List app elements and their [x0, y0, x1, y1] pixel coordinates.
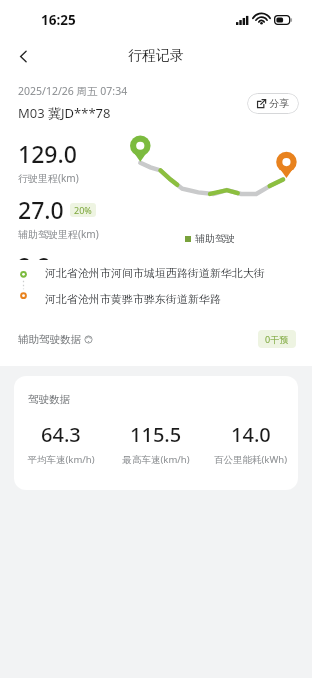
staticText: 最高车速(km/h) — [122, 453, 190, 466]
staticText: 行驶里程(km) — [18, 171, 79, 185]
staticText: 分享 — [269, 97, 289, 110]
staticText: 百公里能耗(kWh) — [214, 453, 287, 466]
staticText: 20% — [74, 204, 92, 216]
staticText: 129.0 — [18, 138, 77, 169]
button[interactable]: 河北省沧州市河间市城垣西路街道新华北大街 — [45, 266, 296, 280]
staticText: 行程记录 — [128, 47, 184, 65]
button[interactable]: 河北省沧州市黄骅市骅东街道新华路 — [45, 292, 296, 306]
staticText: 平均车速(km/h) — [27, 453, 95, 466]
staticText: 16:25 — [41, 11, 76, 29]
staticText: 115.5 — [130, 421, 182, 448]
staticText: 辅助驾驶里程(km) — [18, 227, 99, 241]
staticText: 14.0 — [231, 421, 271, 448]
staticText: 辅助驾驶数据 — [18, 333, 81, 346]
staticText: 河北省沧州市黄骅市骅东街道新华路 — [45, 292, 221, 306]
button[interactable]: 0干预 — [258, 330, 296, 348]
staticText: 27.0 — [18, 194, 64, 225]
staticText: 辅助驾驶 — [195, 232, 235, 245]
staticText: 64.3 — [41, 421, 81, 448]
staticText: 0干预 — [265, 333, 289, 345]
staticText: M03 冀JD***78 — [18, 104, 111, 122]
staticText: 驾驶数据 — [28, 393, 70, 406]
staticText: 河北省沧州市河间市城垣西路街道新华北大街 — [45, 266, 265, 280]
button[interactable]: 分享 — [247, 93, 299, 114]
button[interactable]: Back — [7, 40, 39, 72]
staticText: 2025/12/26 周五 07:34 — [18, 84, 128, 98]
staticText: 2.2 — [18, 250, 51, 260]
